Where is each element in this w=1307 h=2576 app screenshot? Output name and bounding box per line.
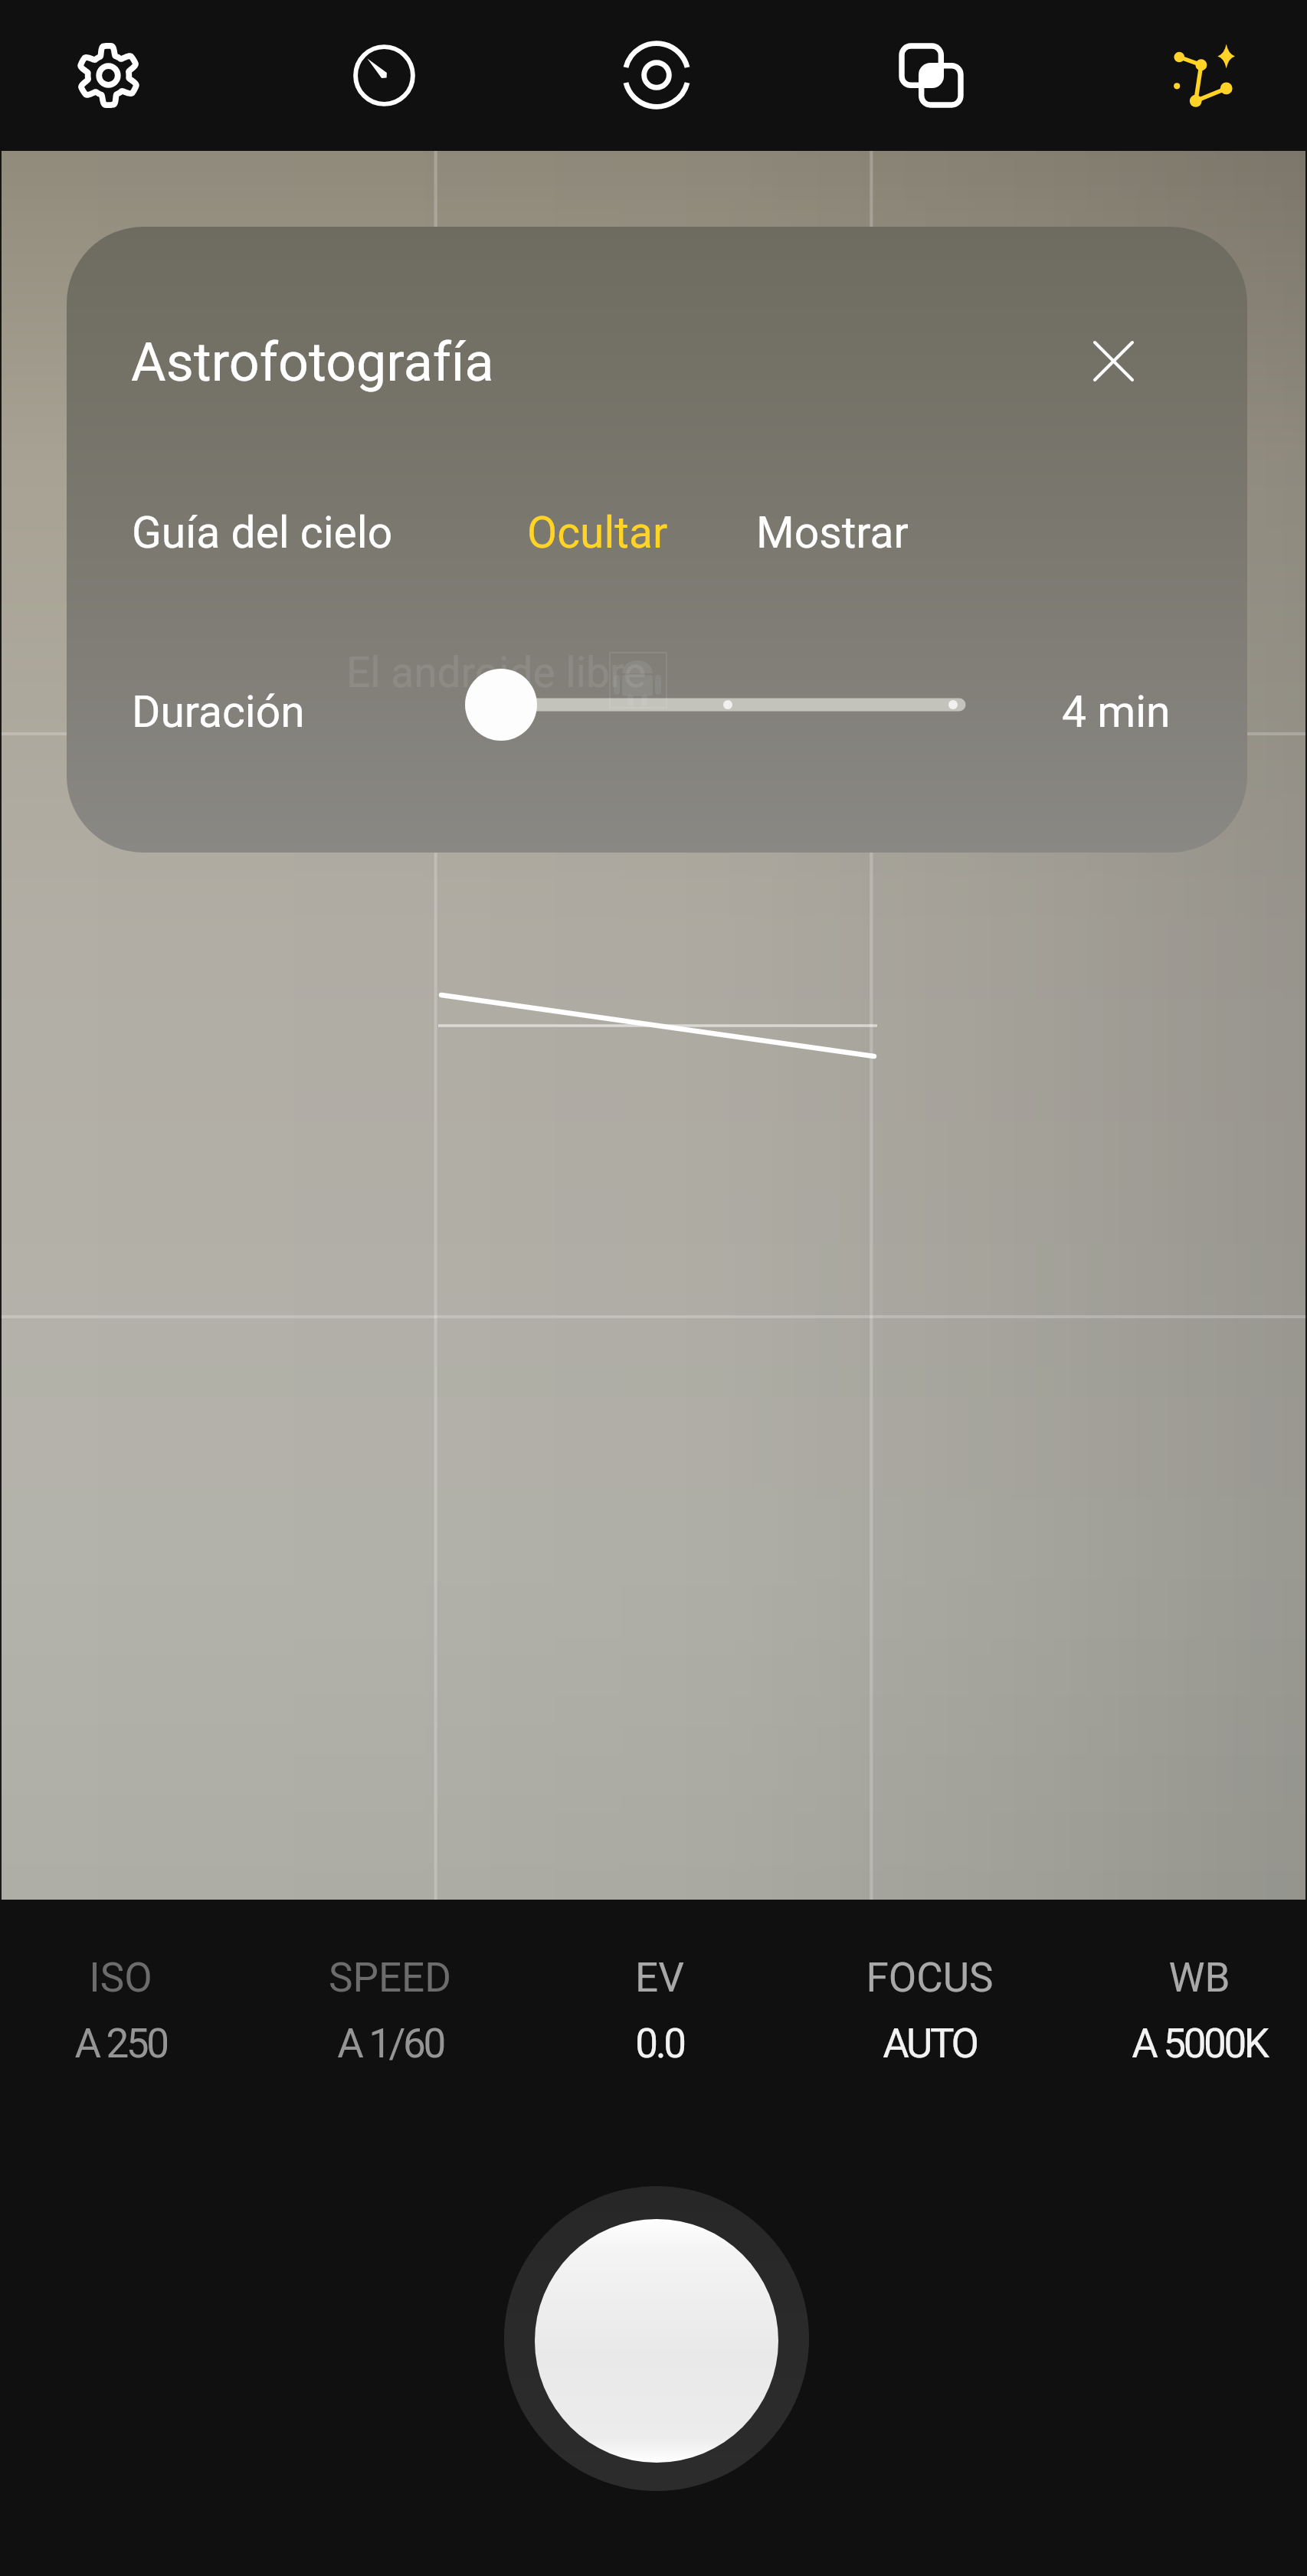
button[interactable]: Mostrar [756,501,909,564]
button[interactable]: Ocultar [527,501,668,564]
button[interactable]: ISO [0,1938,255,2083]
staticText: A 1/60 [337,2020,444,2067]
button[interactable]: Settings [44,11,172,139]
staticText: AUTO [883,2020,977,2067]
staticText: EV [635,1954,684,2002]
staticText: Ocultar [527,507,668,558]
button[interactable]: Exposure metering [592,11,721,139]
button[interactable]: WB [1064,1938,1307,2083]
staticText: A 5000K [1132,2020,1267,2067]
button[interactable]: FOCUS [794,1938,1064,2083]
staticText: A 250 [74,2020,167,2067]
staticText: Astrofotografía [131,331,494,394]
button[interactable]: Shutter [504,2186,809,2491]
staticText: Mostrar [756,507,909,558]
staticText: WB [1168,1954,1230,2002]
button[interactable]: Exposure duration slider [434,643,1063,766]
button[interactable]: Astrophotography [1140,11,1269,139]
staticText: Duración [132,686,305,738]
button[interactable]: Guía del cielo [132,501,393,564]
staticText: Guía del cielo [132,507,393,558]
button[interactable]: Stacking [866,11,995,139]
button[interactable]: Close [1067,315,1159,407]
staticText: ISO [89,1954,152,2002]
staticText: SPEED [329,1954,451,2002]
button[interactable]: Timer [319,11,448,139]
staticText: FOCUS [866,1954,994,2002]
staticText: El androide libre [346,648,647,697]
staticText: 0.0 [635,2020,684,2067]
button[interactable]: EV [525,1938,794,2083]
staticText: 4 min [1062,686,1171,738]
button[interactable]: SPEED [255,1938,525,2083]
